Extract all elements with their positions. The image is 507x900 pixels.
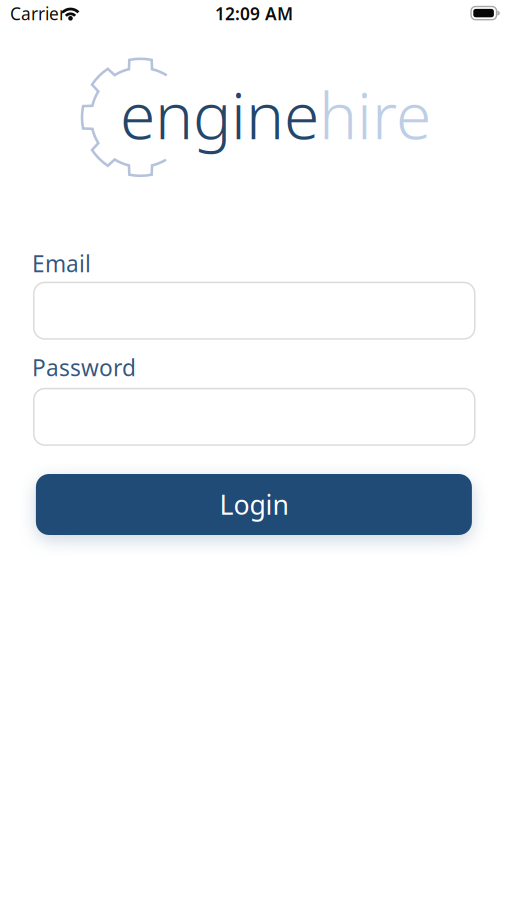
staticText: 12:09 AM [215,2,293,25]
staticText: Carrier [10,2,66,25]
staticText: Login [219,487,288,522]
button[interactable]: Login [36,474,472,535]
button[interactable] [34,282,475,339]
staticText: engine [120,72,319,157]
staticText: Password [32,352,136,383]
staticText: Email [32,248,91,279]
button[interactable] [34,389,475,445]
staticText: hire [319,72,431,157]
